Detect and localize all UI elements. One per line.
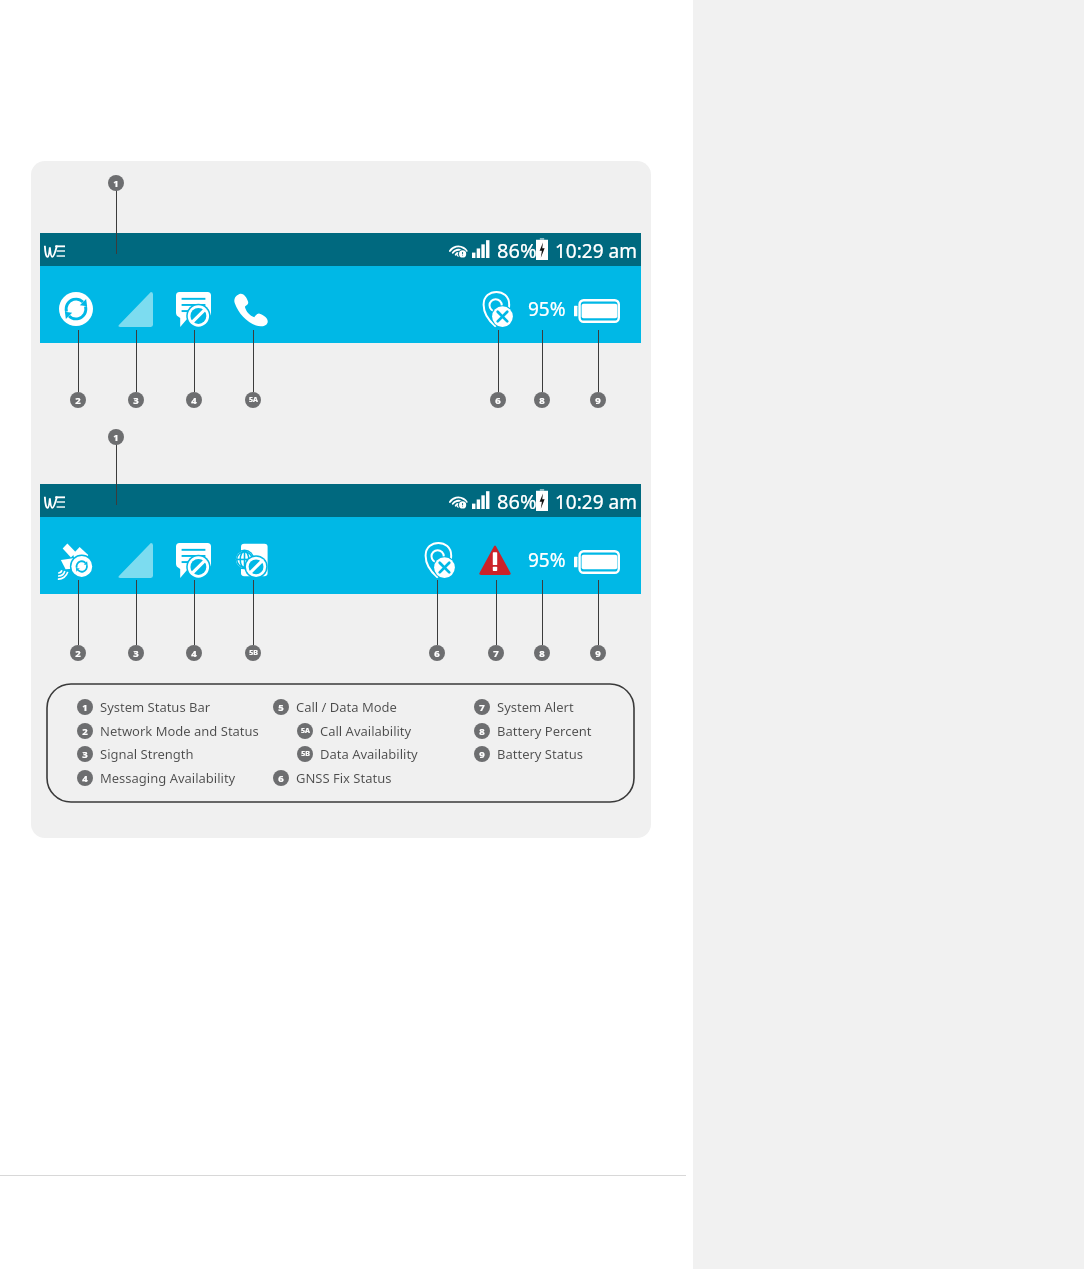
staticText: 1 — [82, 701, 88, 714]
button[interactable]: WE carrier logo — [44, 496, 65, 508]
button[interactable]: 9 — [474, 745, 583, 763]
button[interactable]: Battery charging — [536, 489, 548, 511]
button[interactable]: Signal strength — [117, 543, 153, 578]
staticText: 2 — [75, 394, 81, 407]
staticText: 5B — [301, 749, 310, 759]
staticText: 3 — [82, 748, 88, 761]
button[interactable]: 3 — [77, 745, 194, 763]
staticText: 5 — [278, 701, 284, 714]
button[interactable]: 5 — [273, 698, 397, 716]
staticText: System Alert — [497, 698, 574, 716]
staticText: Signal Strength — [100, 745, 194, 763]
button[interactable]: Wi-Fi connected, no internet — [450, 241, 468, 258]
button[interactable]: 8 — [474, 722, 592, 740]
button[interactable]: Mobile signal strength — [472, 240, 490, 258]
staticText: 7 — [479, 701, 485, 714]
staticText: 6 — [278, 772, 284, 785]
staticText: Call Availability — [320, 722, 412, 740]
button[interactable]: Wi-Fi connected, no internet — [450, 492, 468, 509]
staticText: GNSS Fix Status — [296, 769, 392, 787]
staticText: 4 — [191, 394, 197, 407]
button[interactable]: Call availability — [233, 291, 269, 327]
staticText: 8 — [539, 394, 545, 407]
staticText: 86% — [497, 488, 537, 515]
button[interactable]: Battery charging — [536, 238, 548, 260]
button[interactable]: Signal strength — [117, 292, 153, 327]
staticText: 3 — [133, 394, 139, 407]
staticText: System Status Bar — [100, 698, 211, 716]
button[interactable]: Battery status — [574, 299, 620, 323]
staticText: 1 — [113, 177, 119, 190]
button[interactable]: System alert — [478, 543, 512, 576]
staticText: 9 — [479, 748, 485, 761]
button[interactable]: Network mode: satellite sync — [58, 542, 94, 578]
staticText: 8 — [479, 725, 485, 738]
button[interactable]: Messaging unavailable — [176, 543, 211, 578]
staticText: 7 — [493, 647, 499, 660]
button[interactable]: Battery status — [574, 550, 620, 574]
button[interactable]: No GNSS fix — [482, 291, 514, 327]
staticText: Battery Percent — [497, 722, 592, 740]
staticText: 95% — [528, 296, 566, 322]
staticText: Data Availability — [320, 745, 418, 763]
staticText: 9 — [595, 647, 601, 660]
button[interactable]: 1 — [77, 698, 211, 716]
staticText: 86% — [497, 237, 537, 264]
staticText: 5B — [249, 648, 258, 658]
button[interactable]: 6 — [273, 769, 392, 787]
button[interactable]: 7 — [474, 698, 574, 716]
staticText: 3 — [133, 647, 139, 660]
staticText: Call / Data Mode — [296, 698, 397, 716]
staticText: 95% — [528, 547, 566, 573]
staticText: 1 — [113, 431, 119, 444]
staticText: 2 — [82, 725, 88, 738]
staticText: Battery Status — [497, 745, 583, 763]
button[interactable]: 2 — [77, 722, 259, 740]
button[interactable]: Network mode: sync — [59, 292, 93, 326]
staticText: 6 — [495, 394, 501, 407]
button[interactable]: Data unavailable — [234, 543, 269, 578]
staticText: Network Mode and Status — [100, 722, 259, 740]
staticText: 8 — [539, 647, 545, 660]
button[interactable]: 5B — [297, 745, 418, 763]
button[interactable]: 4 — [77, 769, 236, 787]
staticText: 5A — [301, 726, 310, 736]
staticText: 6 — [434, 647, 440, 660]
staticText: 2 — [75, 647, 81, 660]
button[interactable]: 5A — [297, 722, 412, 740]
staticText: 5A — [249, 395, 258, 405]
staticText: 10:29 am — [555, 489, 637, 515]
staticText: 4 — [82, 772, 88, 785]
staticText: Messaging Availability — [100, 769, 236, 787]
button[interactable]: WE carrier logo — [44, 245, 65, 257]
button[interactable]: Mobile signal strength — [472, 491, 490, 509]
button[interactable]: No GNSS fix — [424, 542, 456, 578]
staticText: 9 — [595, 394, 601, 407]
button[interactable]: Messaging unavailable — [176, 292, 211, 327]
staticText: 10:29 am — [555, 238, 637, 264]
staticText: 4 — [191, 647, 197, 660]
